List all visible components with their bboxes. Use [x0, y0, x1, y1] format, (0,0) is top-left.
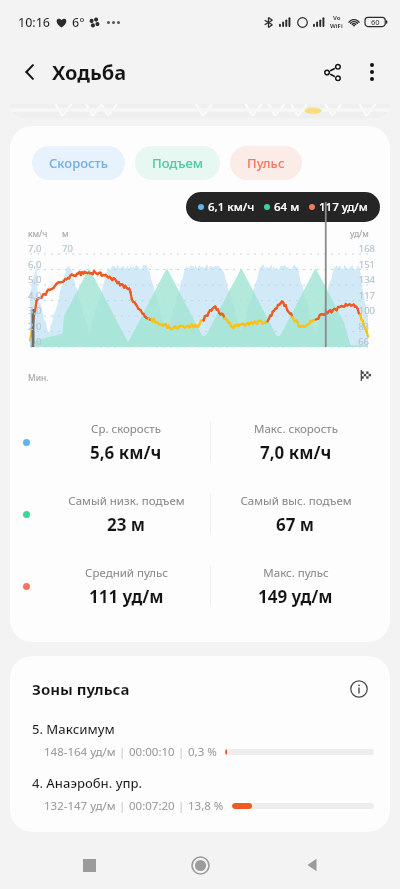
staticText: 67 м: [276, 513, 315, 536]
staticText: 148-164 уд/м: [44, 744, 116, 760]
staticText: 4. Анаэробн. упр.: [32, 774, 143, 792]
staticText: 151: [358, 258, 375, 271]
button[interactable]: Подъем: [135, 146, 220, 180]
staticText: Средний пульс: [85, 565, 168, 581]
staticText: 5,0: [28, 273, 42, 286]
staticText: 00:00:10: [129, 744, 175, 760]
staticText: уд/м: [350, 228, 369, 240]
staticText: Скорость: [49, 154, 108, 172]
staticText: |: [116, 744, 129, 760]
staticText: км/ч: [28, 228, 48, 240]
staticText: Самый выс. подъем: [240, 493, 352, 509]
button[interactable]: Пульс: [230, 146, 302, 180]
staticText: 117 уд/м: [319, 199, 368, 215]
button[interactable]: Home: [177, 842, 223, 888]
staticText: 70: [62, 242, 73, 255]
button[interactable]: More options: [352, 52, 392, 92]
button[interactable]: Share: [312, 52, 352, 92]
staticText: 23 м: [107, 513, 146, 536]
staticText: 7,0 км/ч: [260, 441, 332, 464]
staticText: 5,6 км/ч: [90, 441, 162, 464]
staticText: 168: [358, 242, 375, 255]
staticText: Подъем: [152, 154, 203, 172]
staticText: 6°: [72, 14, 85, 31]
staticText: Зоны пульса: [32, 679, 130, 699]
staticText: Пульс: [247, 154, 285, 172]
staticText: 5. Максимум: [32, 720, 115, 738]
staticText: WiFi: [330, 22, 343, 30]
staticText: 66: [358, 335, 369, 348]
staticText: 64 м: [274, 199, 300, 215]
staticText: Самый низк. подъем: [68, 493, 185, 509]
staticText: Мин.: [28, 372, 49, 384]
staticText: 13,8 %: [188, 798, 224, 814]
staticText: 7,0: [28, 242, 42, 255]
staticText: |: [175, 744, 188, 760]
staticText: 0,3 %: [188, 744, 217, 760]
staticText: 60: [371, 17, 380, 27]
staticText: 83: [358, 320, 369, 333]
button[interactable]: Back: [289, 842, 335, 888]
staticText: 149 уд/м: [258, 585, 333, 608]
staticText: 00:07:20: [129, 798, 175, 814]
button[interactable]: Recents: [66, 842, 112, 888]
staticText: 134: [358, 273, 375, 286]
button[interactable]: Скорость: [32, 146, 125, 180]
staticText: Макс. пульс: [263, 565, 329, 581]
staticText: м: [62, 228, 69, 240]
staticText: Макс. скорость: [254, 421, 338, 437]
staticText: Ходьба: [52, 59, 127, 86]
staticText: 100: [358, 304, 375, 317]
staticText: Ср. скорость: [91, 421, 161, 437]
staticText: 6,1 км/ч: [208, 199, 255, 215]
staticText: 132-147 уд/м: [44, 798, 116, 814]
staticText: 3,0: [28, 304, 42, 317]
staticText: 111 уд/м: [89, 585, 164, 608]
staticText: Vo: [333, 14, 341, 22]
button[interactable]: Info: [344, 674, 374, 704]
staticText: 6,0: [28, 258, 42, 271]
staticText: 10:16: [18, 14, 51, 31]
staticText: 1,0: [28, 335, 42, 348]
staticText: 117: [358, 289, 375, 302]
staticText: |: [175, 798, 188, 814]
staticText: 2,0: [28, 320, 42, 333]
staticText: 4,0: [28, 289, 42, 302]
staticText: |: [116, 798, 129, 814]
button[interactable]: Back: [10, 52, 50, 92]
